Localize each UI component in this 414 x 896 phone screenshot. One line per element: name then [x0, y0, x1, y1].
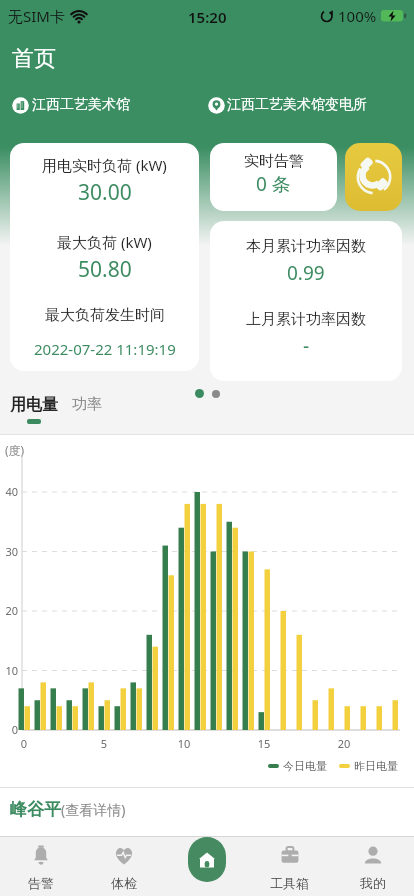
- button[interactable]: 告警: [0, 836, 82, 896]
- staticText: 告警: [28, 875, 54, 891]
- staticText: 40: [0, 484, 18, 499]
- staticText: -: [303, 333, 310, 359]
- staticText: 上月累计功率因数: [246, 310, 366, 329]
- staticText: 我的: [360, 875, 386, 891]
- button[interactable]: 江西工艺美术馆变电所: [208, 96, 367, 114]
- staticText: 20: [0, 603, 18, 618]
- staticText: 江西工艺美术馆变电所: [227, 96, 367, 114]
- staticText: 用电实时负荷 (kW): [42, 155, 167, 175]
- button[interactable]: 体检: [82, 836, 165, 896]
- staticText: 峰谷平: [10, 799, 61, 820]
- staticText: 本月累计功率因数: [246, 237, 366, 256]
- button[interactable]: 本月累计功率因数: [210, 221, 402, 381]
- staticText: 30.00: [78, 178, 132, 207]
- staticText: 0: [14, 736, 34, 751]
- staticText: 5: [94, 736, 114, 751]
- staticText: 30: [0, 544, 18, 559]
- staticText: 江西工艺美术馆: [32, 96, 130, 114]
- staticText: 2022-07-22 11:19:19: [34, 339, 176, 359]
- button[interactable]: 峰谷平: [10, 799, 126, 820]
- staticText: (查看详情): [61, 800, 126, 819]
- staticText: 0: [0, 722, 18, 737]
- button[interactable]: 我的: [331, 836, 414, 896]
- staticText: 体检: [111, 875, 137, 891]
- staticText: 0.99: [287, 260, 325, 286]
- button[interactable]: [345, 143, 402, 211]
- button[interactable]: 用电实时负荷 (kW): [10, 143, 199, 371]
- button[interactable]: 工具箱: [248, 836, 331, 896]
- staticText: 100%: [338, 6, 377, 26]
- staticText: 10: [174, 736, 194, 751]
- staticText: 15:20: [188, 7, 227, 27]
- staticText: 最大负荷发生时间: [45, 306, 165, 325]
- button[interactable]: 实时告警: [210, 143, 337, 211]
- staticText: 昨日电量: [354, 759, 398, 773]
- button[interactable]: 功率: [72, 395, 102, 414]
- button[interactable]: 江西工艺美术馆: [12, 96, 130, 114]
- staticText: 今日电量: [283, 759, 327, 773]
- staticText: 首页: [12, 45, 56, 73]
- staticText: 0 条: [256, 171, 291, 197]
- staticText: 用电量: [10, 395, 58, 415]
- button[interactable]: 用电量: [10, 395, 58, 424]
- staticText: 实时告警: [244, 152, 304, 171]
- staticText: 无SIM卡: [8, 6, 65, 26]
- staticText: 15: [254, 736, 274, 751]
- staticText: 20: [334, 736, 354, 751]
- staticText: (度): [5, 442, 25, 458]
- staticText: 50.80: [78, 255, 132, 284]
- staticText: 工具箱: [270, 875, 309, 891]
- staticText: 10: [0, 663, 18, 678]
- staticText: 最大负荷 (kW): [57, 232, 152, 252]
- button[interactable]: [165, 836, 248, 896]
